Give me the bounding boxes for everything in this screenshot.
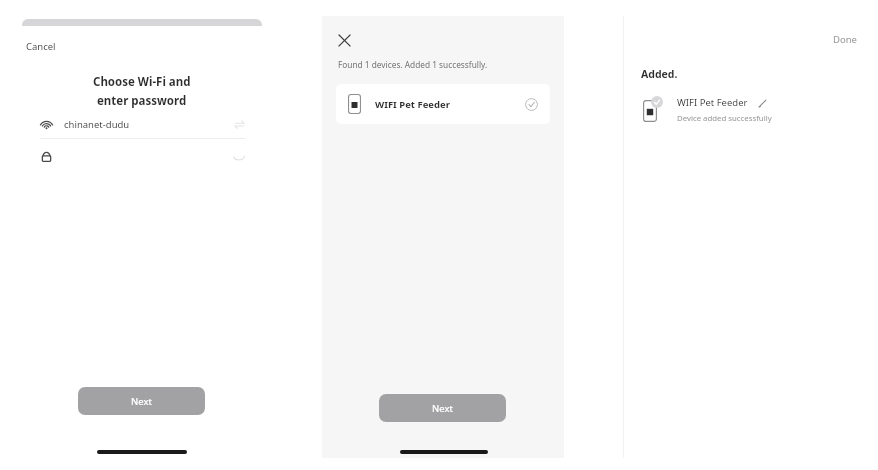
staticText: enter password: [97, 93, 187, 109]
button[interactable]: chinanet-dudu: [40, 110, 245, 138]
staticText: Added.: [641, 67, 678, 81]
staticText: Done: [833, 33, 857, 46]
staticText: Found 1 devices. Added 1 successfully.: [338, 59, 488, 70]
button[interactable]: Rename device: [756, 97, 768, 109]
staticText: Choose Wi-Fi and: [93, 74, 191, 90]
button[interactable]: Done: [829, 30, 861, 49]
staticText: WIFI Pet Feeder: [677, 96, 748, 109]
staticText: Device added successfully: [677, 113, 772, 124]
button[interactable]: Next: [379, 394, 506, 422]
staticText: Cancel: [26, 40, 56, 53]
button[interactable]: Next: [78, 387, 205, 415]
staticText: WIFI Pet Feeder: [375, 98, 450, 111]
button[interactable]: Close: [332, 28, 356, 52]
staticText: Next: [432, 402, 453, 415]
button[interactable]: WIFI Pet Feeder: [641, 90, 861, 130]
button[interactable]: WIFI Pet Feeder: [336, 84, 550, 124]
button[interactable]: Cancel: [22, 37, 60, 56]
staticText: chinanet-dudu: [64, 118, 130, 131]
staticText: Next: [131, 395, 152, 408]
button[interactable]: [40, 141, 245, 171]
